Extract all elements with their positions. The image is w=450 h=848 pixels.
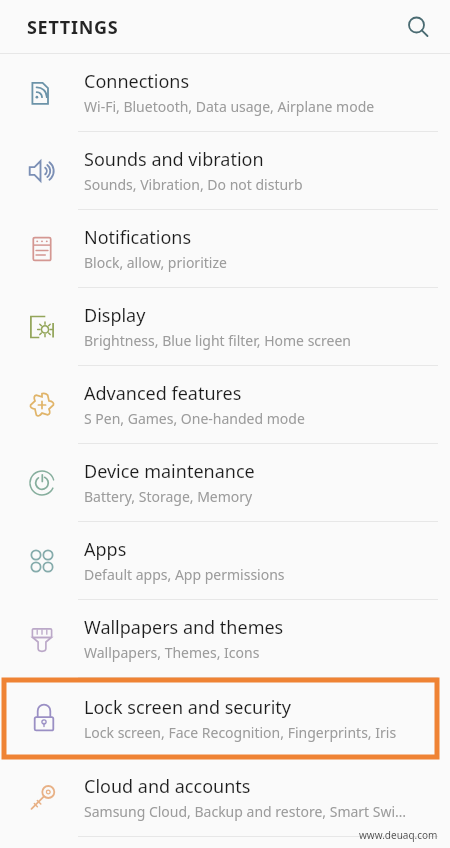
button[interactable]: Notifications — [0, 210, 450, 287]
staticText: Device maintenance — [84, 459, 255, 484]
button[interactable]: Wallpapers and themes — [0, 600, 450, 677]
button[interactable]: Apps — [0, 522, 450, 599]
staticText: Battery, Storage, Memory — [84, 487, 253, 506]
button[interactable]: Advanced features — [0, 366, 450, 443]
staticText: Samsung Cloud, Backup and restore, Smart… — [84, 802, 407, 821]
button[interactable]: Cloud and accounts — [0, 759, 450, 836]
button[interactable]: Connections — [0, 54, 450, 131]
button[interactable]: Sounds and vibration — [0, 132, 450, 209]
staticText: Notifications — [84, 225, 192, 250]
staticText: Connections — [84, 69, 190, 94]
staticText: Wallpapers and themes — [84, 615, 284, 640]
staticText: Apps — [84, 537, 127, 562]
button[interactable]: Lock screen and security — [4, 680, 437, 757]
staticText: Lock screen, Face Recognition, Fingerpri… — [84, 723, 397, 742]
button[interactable]: Display — [0, 288, 450, 365]
button[interactable]: Device maintenance — [0, 444, 450, 521]
staticText: Sounds, Vibration, Do not disturb — [84, 175, 303, 194]
staticText: Wallpapers, Themes, Icons — [84, 643, 260, 662]
staticText: Lock screen and security — [84, 695, 291, 720]
staticText: Cloud and accounts — [84, 774, 251, 799]
staticText: Default apps, App permissions — [84, 565, 285, 584]
staticText: www.deuaq.com — [359, 828, 438, 842]
staticText: Wi-Fi, Bluetooth, Data usage, Airplane m… — [84, 97, 375, 116]
staticText: S Pen, Games, One-handed mode — [84, 409, 305, 428]
staticText: Advanced features — [84, 381, 242, 406]
staticText: Sounds and vibration — [84, 147, 264, 172]
staticText: Display — [84, 303, 146, 328]
button[interactable]: Search — [397, 6, 439, 48]
staticText: SETTINGS — [27, 15, 119, 40]
staticText: Block, allow, prioritize — [84, 253, 227, 272]
staticText: Brightness, Blue light filter, Home scre… — [84, 331, 352, 350]
